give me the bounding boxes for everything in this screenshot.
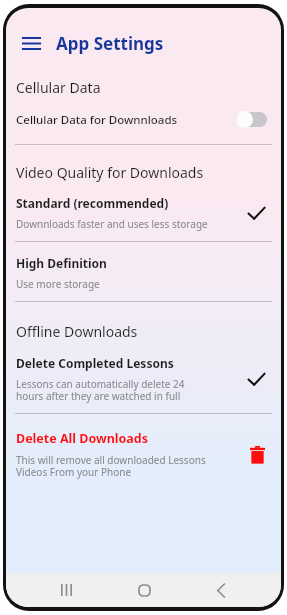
- staticText: Delete Completed Lessons: [16, 355, 174, 371]
- staticText: This will remove all downloaded Lessons …: [16, 453, 206, 479]
- staticText: Lessons can automatically delete 24 hour…: [16, 377, 185, 403]
- staticText: Offline Downloads: [16, 322, 138, 341]
- button[interactable]: Back: [203, 573, 239, 607]
- button[interactable]: Cellular data for downloads toggle: [236, 111, 269, 128]
- staticText: Use more storage: [16, 277, 100, 291]
- staticText: Cellular Data: [16, 78, 101, 97]
- button[interactable]: Standard (recommended): [6, 195, 281, 231]
- button[interactable]: Recent apps: [48, 573, 84, 607]
- button[interactable]: Delete All Downloads: [6, 430, 281, 479]
- button[interactable]: Home: [126, 573, 162, 607]
- staticText: Delete All Downloads: [16, 430, 149, 447]
- staticText: Video Quality for Downloads: [16, 163, 204, 182]
- button[interactable]: Delete Completed Lessons: [6, 355, 281, 403]
- staticText: High Definition: [16, 255, 107, 271]
- button[interactable]: Cellular Data for Downnloads: [6, 109, 281, 130]
- staticText: App Settings: [56, 32, 164, 55]
- staticText: Standard (recommended): [16, 195, 169, 211]
- button[interactable]: High Definition: [6, 255, 281, 291]
- staticText: Downnloads faster and uses less storage: [16, 217, 208, 231]
- staticText: Cellular Data for Downnloads: [16, 112, 236, 128]
- button[interactable]: Open navigation menu: [18, 30, 44, 56]
